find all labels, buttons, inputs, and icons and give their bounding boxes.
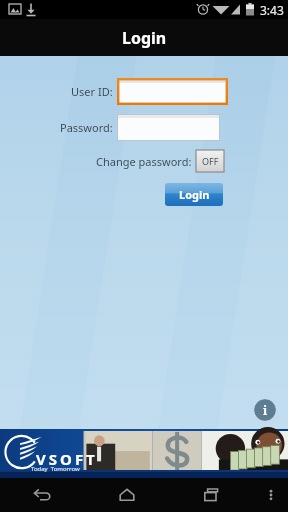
- staticText: Today Tomorrow: [31, 465, 80, 473]
- button[interactable]: [117, 78, 228, 105]
- button[interactable]: OFF: [196, 150, 224, 172]
- button[interactable]: [117, 114, 220, 141]
- staticText: Password:: [60, 120, 113, 135]
- staticText: Login: [122, 27, 167, 49]
- staticText: Login: [179, 187, 210, 202]
- button[interactable]: Login: [165, 183, 223, 206]
- button[interactable]: Home: [84, 478, 169, 512]
- staticText: VSOFT: [36, 449, 98, 469]
- staticText: OFF: [202, 155, 219, 167]
- staticText: i: [263, 402, 268, 418]
- staticText: 3:43: [260, 2, 284, 18]
- button[interactable]: Back: [0, 478, 84, 512]
- button[interactable]: Information: [254, 399, 276, 421]
- staticText: User ID:: [71, 84, 113, 99]
- staticText: Change password:: [96, 154, 192, 169]
- button[interactable]: More options: [254, 478, 288, 512]
- button[interactable]: Recent apps: [169, 478, 254, 512]
- button[interactable]: Advertisement: [0, 429, 288, 478]
